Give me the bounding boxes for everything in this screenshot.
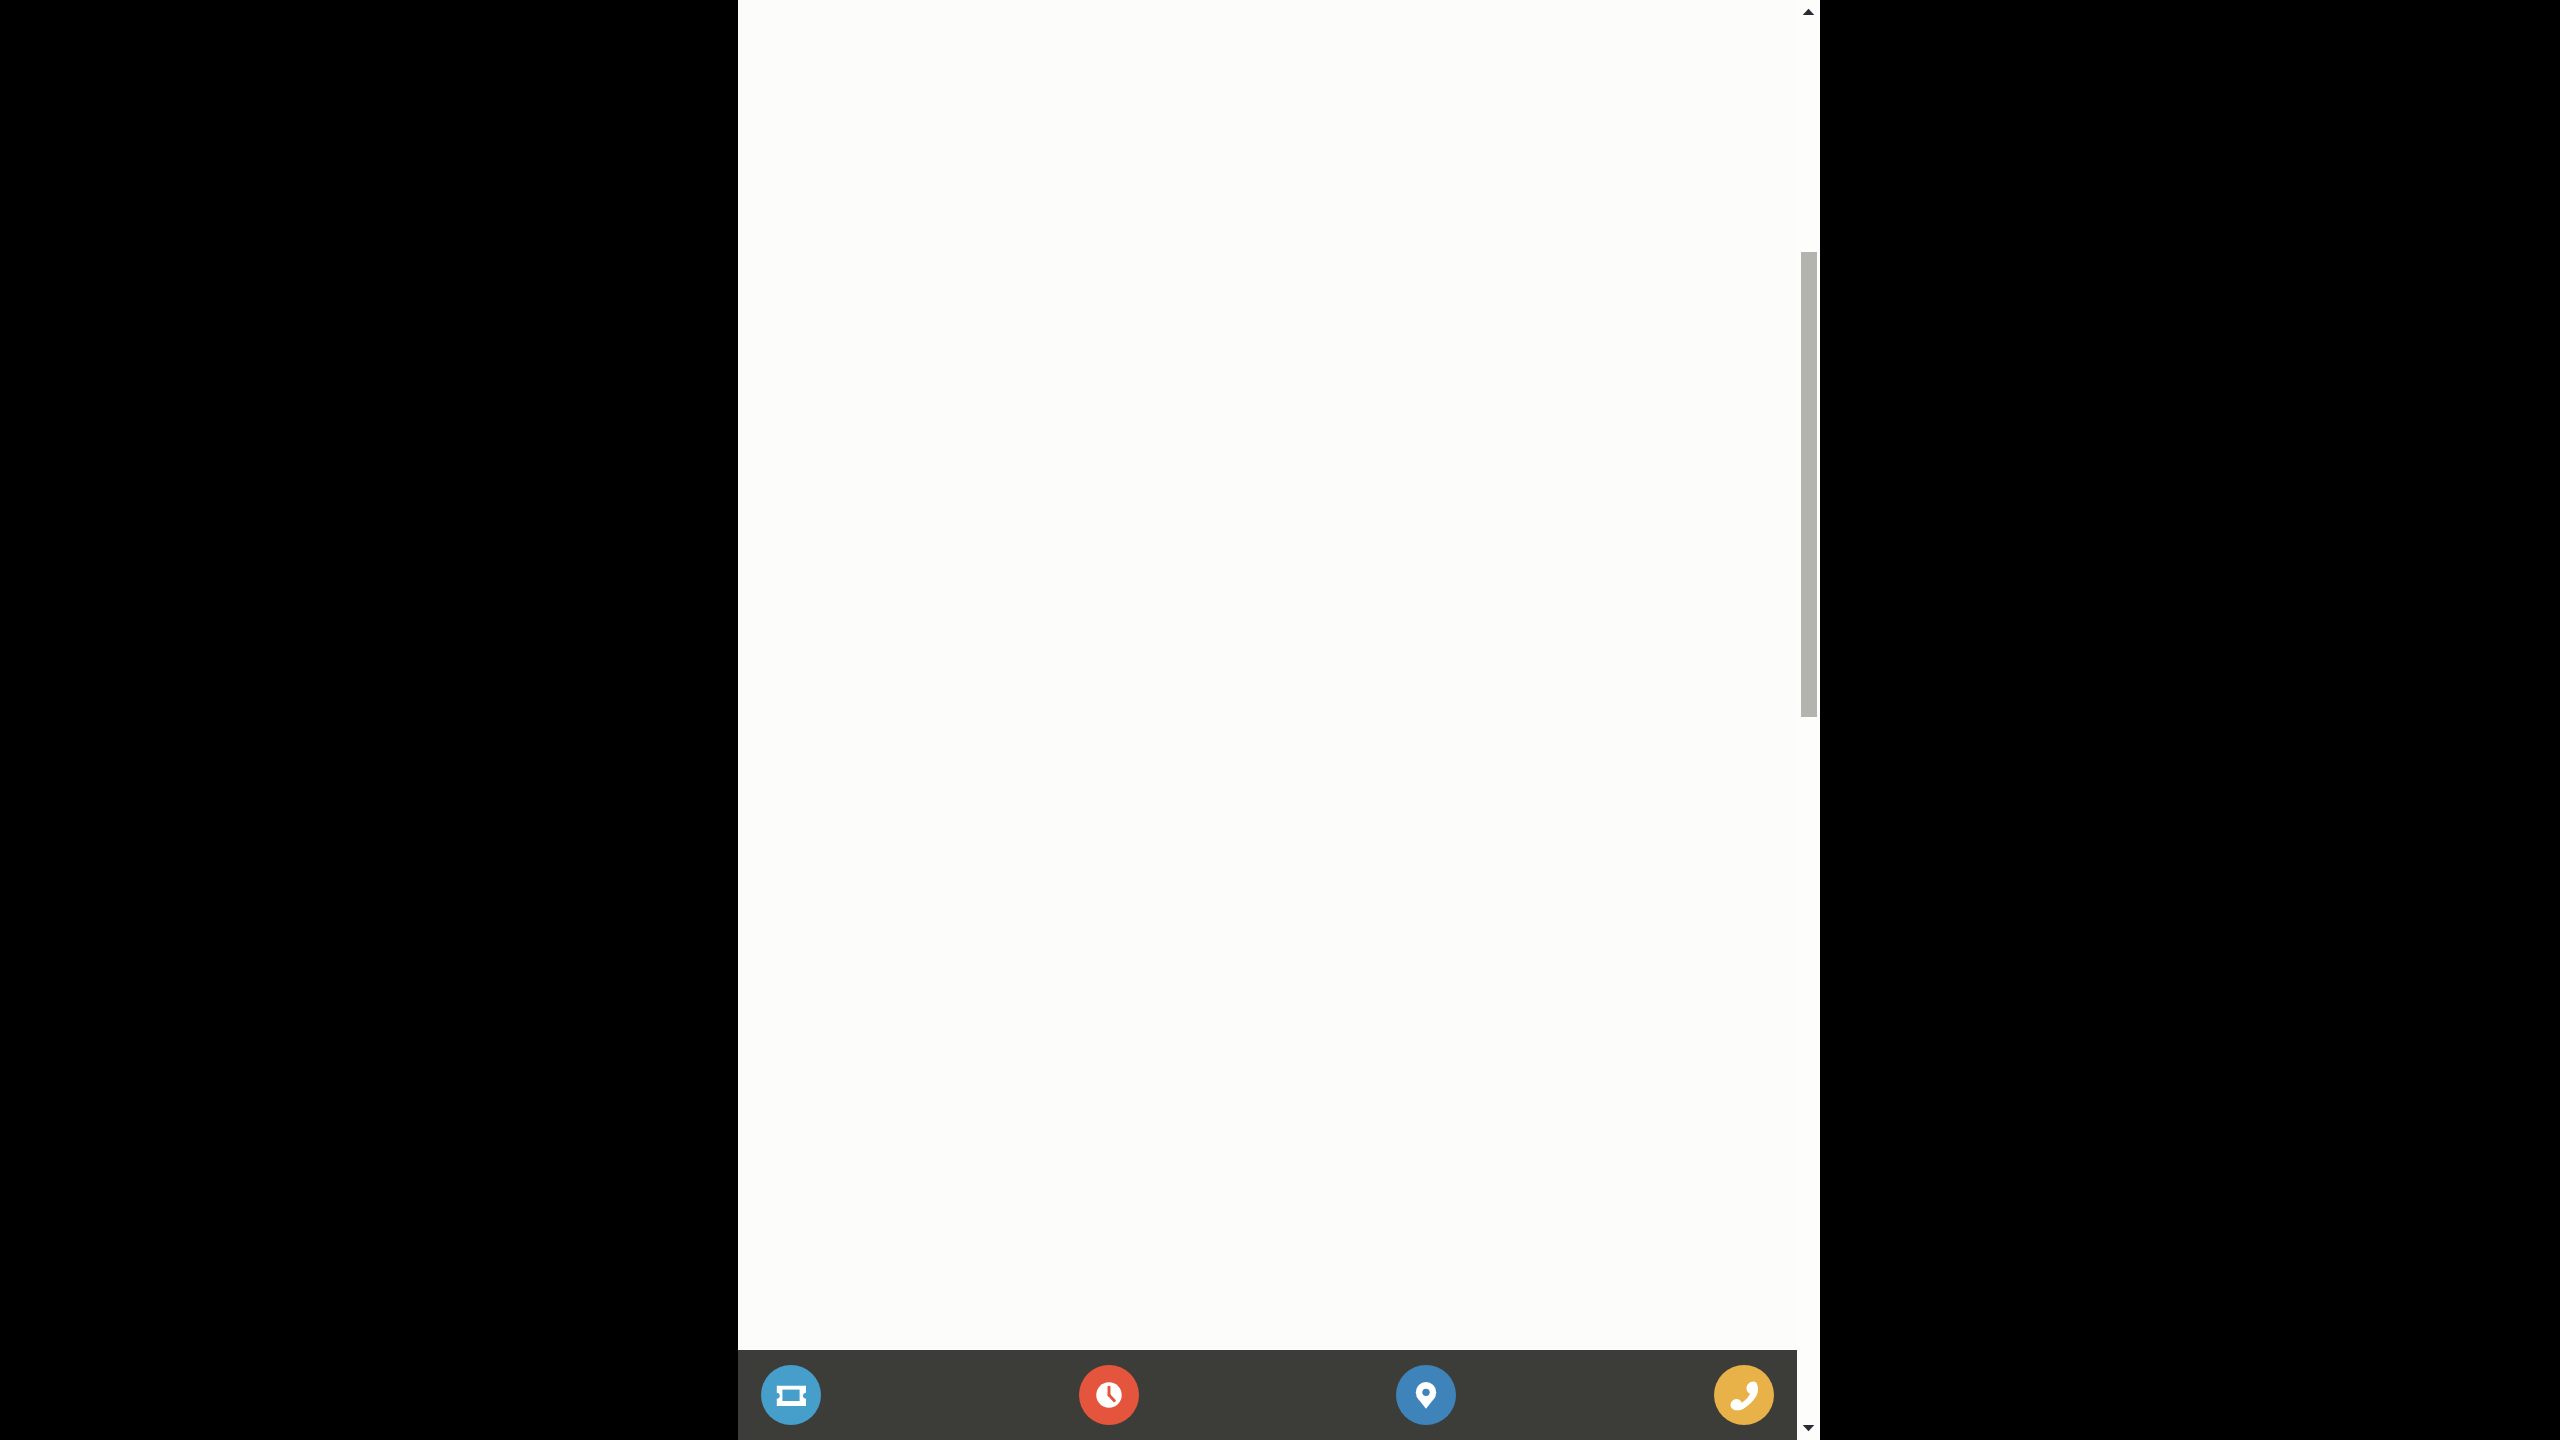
- button[interactable]: Scroll down: [1797, 1416, 1820, 1440]
- button[interactable]: Scroll up: [1797, 0, 1820, 24]
- button[interactable]: Call: [1714, 1365, 1774, 1425]
- button[interactable]: Tickets: [761, 1365, 821, 1425]
- button[interactable]: Places: [1396, 1365, 1456, 1425]
- button[interactable]: Recent: [1079, 1365, 1139, 1425]
